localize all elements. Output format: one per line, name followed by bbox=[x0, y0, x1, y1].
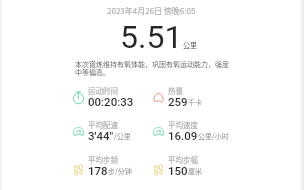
button[interactable]: 平均速度 bbox=[153, 119, 219, 141]
staticText: 259 bbox=[168, 95, 188, 108]
button[interactable]: 运动时间 bbox=[73, 85, 139, 107]
staticText: 公里 bbox=[183, 40, 197, 50]
staticText: 00:20:33 bbox=[88, 95, 134, 108]
staticText: 2023年4月26日 傍晚6:05 bbox=[107, 5, 196, 17]
button[interactable]: 平均配速 bbox=[73, 119, 139, 141]
staticText: 步/分钟 bbox=[108, 166, 132, 176]
staticText: 3'44" bbox=[88, 129, 114, 142]
staticText: 5.51 bbox=[120, 18, 183, 56]
staticText: 178 bbox=[88, 164, 108, 177]
button[interactable]: 平均步幅 bbox=[153, 154, 219, 176]
button[interactable]: 平均步频 bbox=[73, 154, 139, 176]
staticText: 本次锻炼维持有氧体能，巩固有氧运动能力，强度 bbox=[75, 59, 229, 69]
staticText: 厘米 bbox=[188, 166, 202, 176]
staticText: /公里 bbox=[114, 131, 131, 141]
staticText: 平均配速 bbox=[88, 119, 118, 130]
staticText: 平均步频 bbox=[88, 154, 118, 165]
staticText: 150 bbox=[168, 164, 188, 177]
staticText: 千卡 bbox=[188, 97, 202, 107]
staticText: 中等偏高。 bbox=[75, 67, 110, 77]
button[interactable]: 热量 bbox=[153, 85, 219, 107]
staticText: 运动时间 bbox=[88, 85, 118, 96]
staticText: 公里/小时 bbox=[198, 131, 229, 141]
staticText: 平均速度 bbox=[168, 119, 198, 130]
staticText: 16.09 bbox=[168, 129, 198, 142]
staticText: 热量 bbox=[168, 85, 183, 96]
staticText: 平均步幅 bbox=[168, 154, 198, 165]
